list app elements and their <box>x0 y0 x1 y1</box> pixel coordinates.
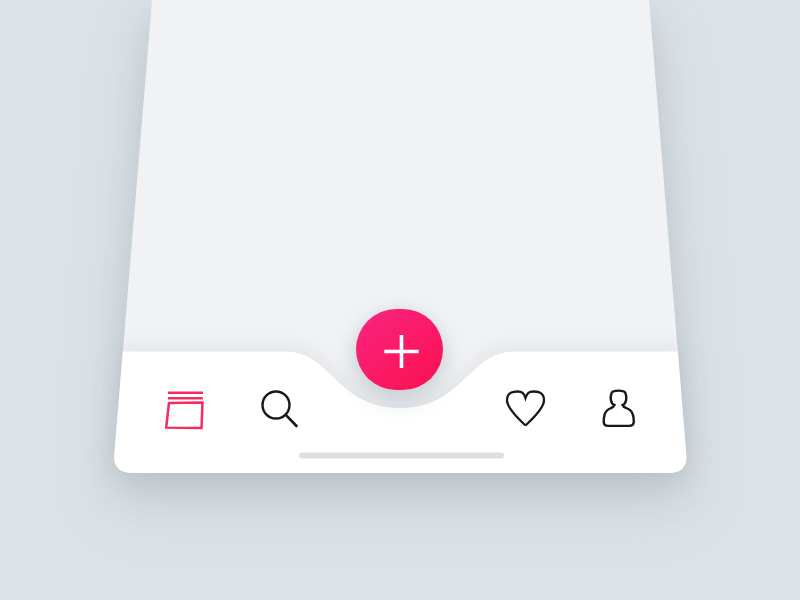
button[interactable] <box>253 383 303 433</box>
button[interactable] <box>501 385 551 435</box>
button[interactable] <box>356 309 443 390</box>
button[interactable] <box>160 385 210 435</box>
button[interactable] <box>595 383 645 433</box>
